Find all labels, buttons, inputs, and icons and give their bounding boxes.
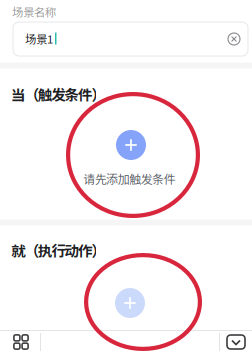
button[interactable]: Add trigger — [116, 130, 146, 160]
staticText: 就（执行动作） — [11, 239, 106, 261]
staticText: 场景名称 — [12, 3, 56, 20]
staticText: 当（触发条件） — [11, 83, 106, 105]
button[interactable]: Switch keyboard — [1, 329, 41, 354]
button[interactable]: Clear text — [220, 25, 248, 53]
staticText: 场景1 — [25, 30, 53, 47]
button[interactable]: Dismiss keyboard — [220, 329, 252, 354]
staticText: 请先添加触发条件 — [83, 170, 176, 187]
button[interactable]: Add action — [115, 288, 145, 318]
